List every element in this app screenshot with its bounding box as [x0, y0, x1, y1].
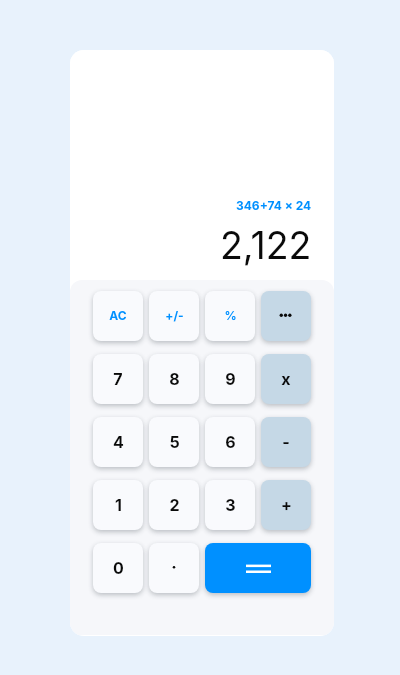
staticText: 3 — [225, 495, 236, 514]
staticText: + — [281, 495, 292, 514]
button[interactable]: More options — [261, 291, 311, 341]
button[interactable]: AC — [93, 291, 143, 341]
button[interactable]: Decimal point — [149, 543, 199, 593]
button[interactable]: 2 — [149, 480, 199, 530]
button[interactable]: 4 — [93, 417, 143, 467]
button[interactable]: 7 — [93, 354, 143, 404]
staticText: 6 — [225, 432, 236, 451]
button[interactable]: 8 — [149, 354, 199, 404]
button[interactable]: +/- — [149, 291, 199, 341]
button[interactable]: 3 — [205, 480, 255, 530]
button[interactable]: + — [261, 480, 311, 530]
staticText: 2 — [169, 495, 180, 514]
staticText: 0 — [113, 558, 124, 577]
staticText: 1 — [115, 495, 122, 514]
staticText: x — [281, 369, 291, 388]
button[interactable]: x — [261, 354, 311, 404]
button[interactable]: 6 — [205, 417, 255, 467]
staticText: AC — [109, 308, 127, 323]
staticText: 9 — [225, 369, 236, 388]
staticText: 8 — [169, 369, 180, 388]
button[interactable]: % — [205, 291, 255, 341]
staticText: 5 — [169, 432, 180, 451]
staticText: 7 — [113, 369, 123, 388]
button[interactable]: 0 — [93, 543, 143, 593]
button[interactable]: 5 — [149, 417, 199, 467]
button[interactable]: 9 — [205, 354, 255, 404]
staticText: % — [224, 308, 237, 323]
button[interactable]: 1 — [93, 480, 143, 530]
staticText: 4 — [113, 432, 124, 451]
staticText: 346+74 × 24 — [236, 198, 312, 213]
staticText: +/- — [165, 308, 184, 323]
button[interactable]: - — [261, 417, 311, 467]
staticText: - — [282, 432, 290, 451]
staticText: 2,122 — [220, 223, 312, 268]
button[interactable]: Equals — [205, 543, 311, 593]
